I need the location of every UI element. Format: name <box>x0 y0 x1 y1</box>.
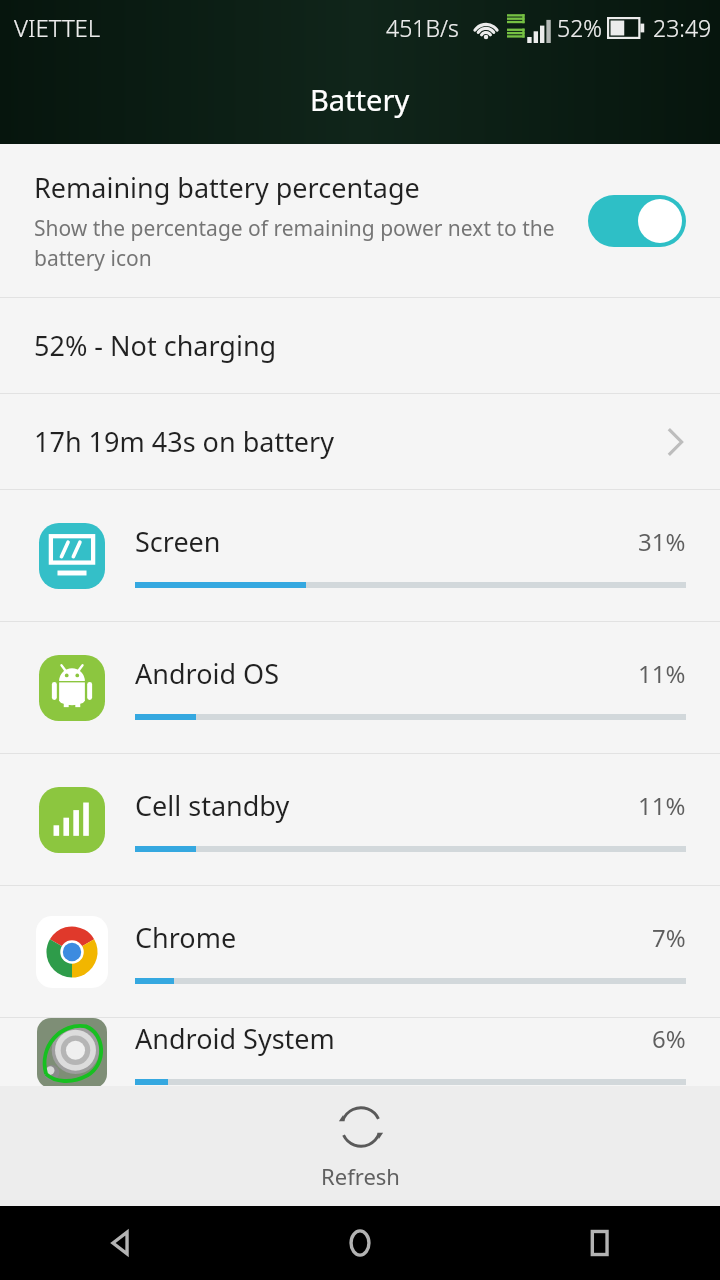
staticText: 7% <box>652 921 686 954</box>
button[interactable]: Back <box>0 1206 240 1280</box>
button[interactable]: Remaining battery percentage <box>0 144 720 297</box>
staticText: 11% <box>638 657 686 690</box>
button[interactable]: Android OS <box>0 622 720 753</box>
staticText: 11% <box>638 789 686 822</box>
button[interactable]: 17h 19m 43s on battery <box>0 394 720 489</box>
staticText: Screen <box>135 523 638 560</box>
button[interactable]: 52% - Not charging <box>0 298 720 393</box>
staticText: Chrome <box>135 919 652 956</box>
button[interactable]: Toggle remaining battery percentage <box>588 195 686 247</box>
button[interactable]: Refresh <box>0 1086 720 1206</box>
staticText: VIETTEL <box>14 11 101 44</box>
staticText: Refresh <box>321 1161 400 1191</box>
staticText: Show the percentage of remaining power n… <box>34 214 570 272</box>
button[interactable]: Screen <box>0 490 720 621</box>
staticText: Android OS <box>135 655 638 692</box>
staticText: Cell standby <box>135 787 638 824</box>
button[interactable]: Android System <box>0 1018 720 1086</box>
staticText: Remaining battery percentage <box>34 169 420 206</box>
staticText: Battery <box>310 80 410 119</box>
staticText: 17h 19m 43s on battery <box>34 423 664 460</box>
button[interactable]: Home <box>240 1206 480 1280</box>
staticText: 52% - Not charging <box>34 327 277 364</box>
button[interactable]: Chrome <box>0 886 720 1017</box>
staticText: 6% <box>652 1022 686 1055</box>
button[interactable]: Recent apps <box>480 1206 720 1280</box>
staticText: 31% <box>638 525 686 558</box>
staticText: 451B/s <box>386 12 459 43</box>
staticText: 52% <box>557 12 602 43</box>
button[interactable]: Cell standby <box>0 754 720 885</box>
staticText: Android System <box>135 1020 652 1057</box>
staticText: 23:49 <box>653 12 712 43</box>
